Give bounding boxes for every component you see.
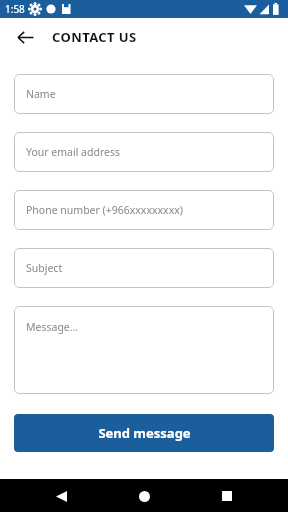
staticText: CONTACT US [52,28,137,46]
staticText: Name [26,87,56,101]
button[interactable]: Subject [14,248,274,288]
staticText: Send message [98,424,191,442]
button[interactable]: Recent apps [212,481,242,511]
button[interactable]: Back [46,481,76,511]
button[interactable]: Message… [14,306,274,394]
button[interactable]: Back [10,22,40,52]
staticText: Your email address [26,145,121,159]
staticText: 1:58 [5,2,25,16]
button[interactable]: Home [129,481,159,511]
button[interactable]: Send message [14,414,274,452]
staticText: Phone number (+966xxxxxxxxx) [26,203,183,217]
button[interactable]: Your email address [14,132,274,172]
button[interactable]: Name [14,74,274,114]
button[interactable]: Phone number (+966xxxxxxxxx) [14,190,274,230]
staticText: Subject [26,261,63,275]
staticText: Message… [26,320,79,334]
